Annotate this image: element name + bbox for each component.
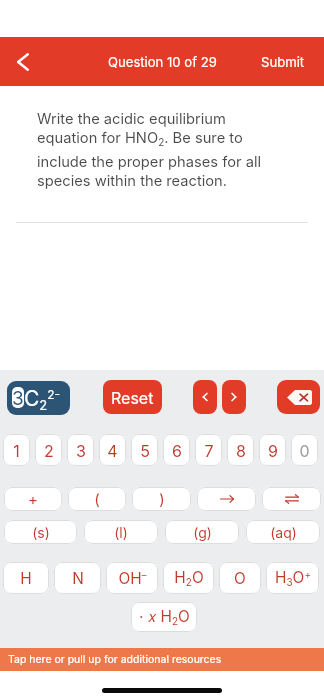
- button[interactable]: 8: [227, 434, 254, 466]
- button[interactable]: (s): [4, 520, 77, 544]
- button[interactable]: 7: [195, 434, 222, 466]
- staticText: Question 10 of 29: [108, 54, 217, 70]
- staticText: H2O: [174, 568, 204, 588]
- staticText: O: [234, 569, 246, 588]
- staticText: 2: [44, 441, 54, 460]
- staticText: Write the acidic equilibrium equation fo…: [37, 110, 277, 190]
- button[interactable]: ): [132, 487, 191, 511]
- button[interactable]: O: [219, 562, 261, 594]
- staticText: (aq): [270, 524, 297, 541]
- staticText: Reset: [111, 388, 154, 407]
- button[interactable]: Next: [222, 380, 246, 414]
- button[interactable]: (: [68, 487, 126, 511]
- staticText: · 𝑥 H2O: [139, 607, 190, 627]
- button[interactable]: 3: [67, 434, 94, 466]
- button[interactable]: 5: [131, 434, 158, 466]
- button[interactable]: 6: [163, 434, 190, 466]
- button[interactable]: H3O+: [266, 562, 319, 594]
- staticText: H3O+: [275, 568, 311, 588]
- button[interactable]: (l): [84, 520, 158, 544]
- staticText: 7: [204, 441, 214, 460]
- button[interactable]: 0: [291, 434, 318, 466]
- staticText: OH–: [118, 569, 147, 588]
- button[interactable]: H: [3, 562, 49, 594]
- staticText: +: [28, 490, 38, 508]
- button[interactable]: Tap here or pull up for additional resou…: [0, 648, 324, 671]
- button[interactable]: Submit: [241, 37, 324, 86]
- button[interactable]: Yields arrow: [197, 487, 256, 511]
- staticText: C22-: [24, 386, 61, 413]
- staticText: 4: [107, 441, 118, 460]
- button[interactable]: 9: [259, 434, 286, 466]
- button[interactable]: 1: [3, 434, 30, 466]
- staticText: Tap here or pull up for additional resou…: [8, 653, 222, 666]
- staticText: (: [94, 490, 100, 508]
- button[interactable]: N: [54, 562, 101, 594]
- staticText: (g): [193, 524, 212, 541]
- button[interactable]: +: [4, 487, 62, 511]
- button[interactable]: Previous: [193, 380, 217, 414]
- staticText: 9: [268, 441, 278, 460]
- button[interactable]: (g): [165, 520, 239, 544]
- staticText: (s): [32, 524, 50, 541]
- staticText: (l): [114, 524, 128, 541]
- staticText: 3: [12, 387, 24, 408]
- button[interactable]: Equilibrium arrows: [262, 487, 321, 511]
- staticText: 6: [172, 441, 182, 460]
- staticText: 1: [13, 441, 20, 460]
- staticText: 3: [76, 441, 86, 460]
- button[interactable]: · 𝑥 H2O: [131, 602, 197, 632]
- button[interactable]: 2: [35, 434, 62, 466]
- staticText: ): [159, 490, 165, 508]
- staticText: 8: [236, 441, 246, 460]
- staticText: H: [20, 569, 32, 588]
- button[interactable]: OH–: [106, 562, 158, 594]
- staticText: 0: [299, 441, 310, 460]
- button[interactable]: Backspace: [277, 380, 320, 414]
- button[interactable]: 3: [7, 381, 70, 415]
- staticText: N: [72, 569, 84, 588]
- button[interactable]: Back: [0, 37, 46, 86]
- button[interactable]: (aq): [246, 520, 320, 544]
- staticText: 5: [140, 441, 150, 460]
- button[interactable]: Reset: [103, 380, 162, 414]
- button[interactable]: 4: [99, 434, 126, 466]
- button[interactable]: H2O: [163, 562, 214, 594]
- staticText: Submit: [261, 54, 305, 70]
